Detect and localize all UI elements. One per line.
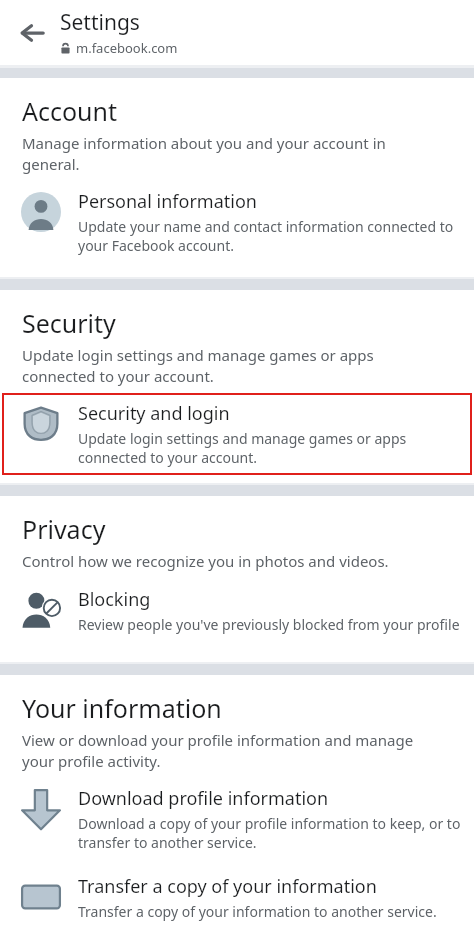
staticText: View or download your profile informatio…	[22, 730, 438, 772]
staticText: Security	[22, 306, 116, 340]
staticText: Account	[22, 94, 118, 128]
staticText: Download profile information	[78, 786, 329, 811]
staticText: Update login settings and manage games o…	[22, 345, 438, 387]
staticText: Privacy	[22, 512, 106, 546]
staticText: Review people you've previously blocked …	[78, 615, 460, 634]
button[interactable]: Transfer a copy of your information	[0, 864, 474, 933]
staticText: Update your name and contact information…	[78, 217, 462, 255]
staticText: Transfer a copy of your information to a…	[78, 902, 437, 921]
staticText: Manage information about you and your ac…	[22, 133, 438, 175]
staticText: Security and login	[78, 401, 230, 426]
button[interactable]: Security and login	[2, 393, 472, 475]
staticText: m.facebook.com	[76, 39, 178, 57]
staticText: Your information	[22, 691, 222, 725]
staticText: Personal information	[78, 189, 257, 214]
staticText: Blocking	[78, 587, 151, 612]
button[interactable]: Blocking	[0, 571, 474, 662]
staticText: Download a copy of your profile informat…	[78, 814, 462, 852]
staticText: Settings	[60, 8, 140, 37]
button[interactable]: Download profile information	[0, 772, 474, 864]
staticText: Update login settings and manage games o…	[78, 429, 460, 467]
staticText: Transfer a copy of your information	[78, 874, 377, 899]
button[interactable]: Back	[8, 9, 56, 57]
button[interactable]: Personal information	[0, 175, 474, 277]
staticText: Control how we recognize you in photos a…	[22, 551, 389, 571]
